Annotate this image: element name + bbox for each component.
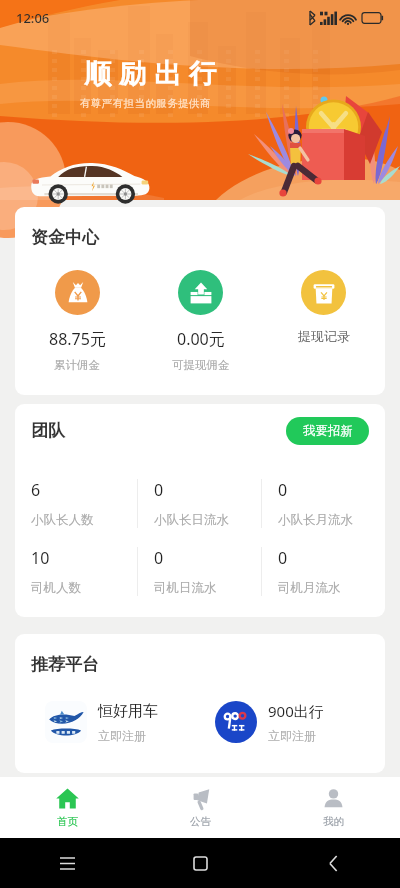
button[interactable]: 公告 [134, 777, 267, 838]
staticText: 0 [154, 547, 164, 569]
button[interactable]: Back [267, 838, 400, 888]
staticText: 6 [31, 479, 41, 501]
staticText: 公告 [190, 815, 211, 828]
staticText: 团队 [31, 420, 65, 441]
staticText: 12:06 [16, 9, 50, 27]
staticText: 88.75元 [49, 328, 106, 350]
staticText: 小队长人数 [31, 512, 94, 528]
staticText: 立即注册 [268, 728, 316, 743]
staticText: 顺励出行 [80, 57, 220, 91]
staticText: 我的 [323, 815, 344, 828]
staticText: 首页 [57, 815, 78, 828]
staticText: 资金中心 [31, 227, 99, 248]
button[interactable]: 我的 [267, 777, 400, 838]
staticText: 提现记录 [298, 328, 350, 344]
staticText: 立即注册 [98, 728, 146, 743]
button[interactable]: Home [134, 838, 267, 888]
staticText: 小队长月流水 [278, 512, 353, 528]
staticText: 恒好用车 [98, 702, 158, 721]
staticText: 0 [154, 479, 164, 501]
staticText: 司机月流水 [278, 580, 341, 596]
staticText: 我要招新 [303, 423, 353, 439]
staticText: 小队长日流水 [154, 512, 229, 528]
button[interactable]: 88.75元 [15, 270, 139, 372]
button[interactable]: 首页 [0, 777, 134, 838]
button[interactable]: 900出行 [215, 701, 385, 743]
staticText: 900出行 [268, 701, 324, 721]
staticText: 累计佣金 [54, 358, 100, 372]
button[interactable]: 提现记录 [262, 270, 385, 344]
button[interactable]: Recent apps [0, 838, 134, 888]
staticText: 0.00元 [177, 328, 225, 350]
staticText: 司机日流水 [154, 580, 217, 596]
staticText: 司机人数 [31, 580, 81, 596]
button[interactable]: 恒好用车 [45, 701, 215, 743]
staticText: 0 [278, 479, 288, 501]
staticText: 10 [31, 547, 50, 569]
staticText: 推荐平台 [31, 654, 99, 675]
staticText: 0 [278, 547, 288, 569]
button[interactable]: 0.00元 [139, 270, 262, 372]
button[interactable]: 我要招新 [286, 417, 369, 445]
staticText: 可提现佣金 [172, 358, 230, 372]
staticText: 有尊严有担当的服务提供商 [80, 97, 211, 110]
